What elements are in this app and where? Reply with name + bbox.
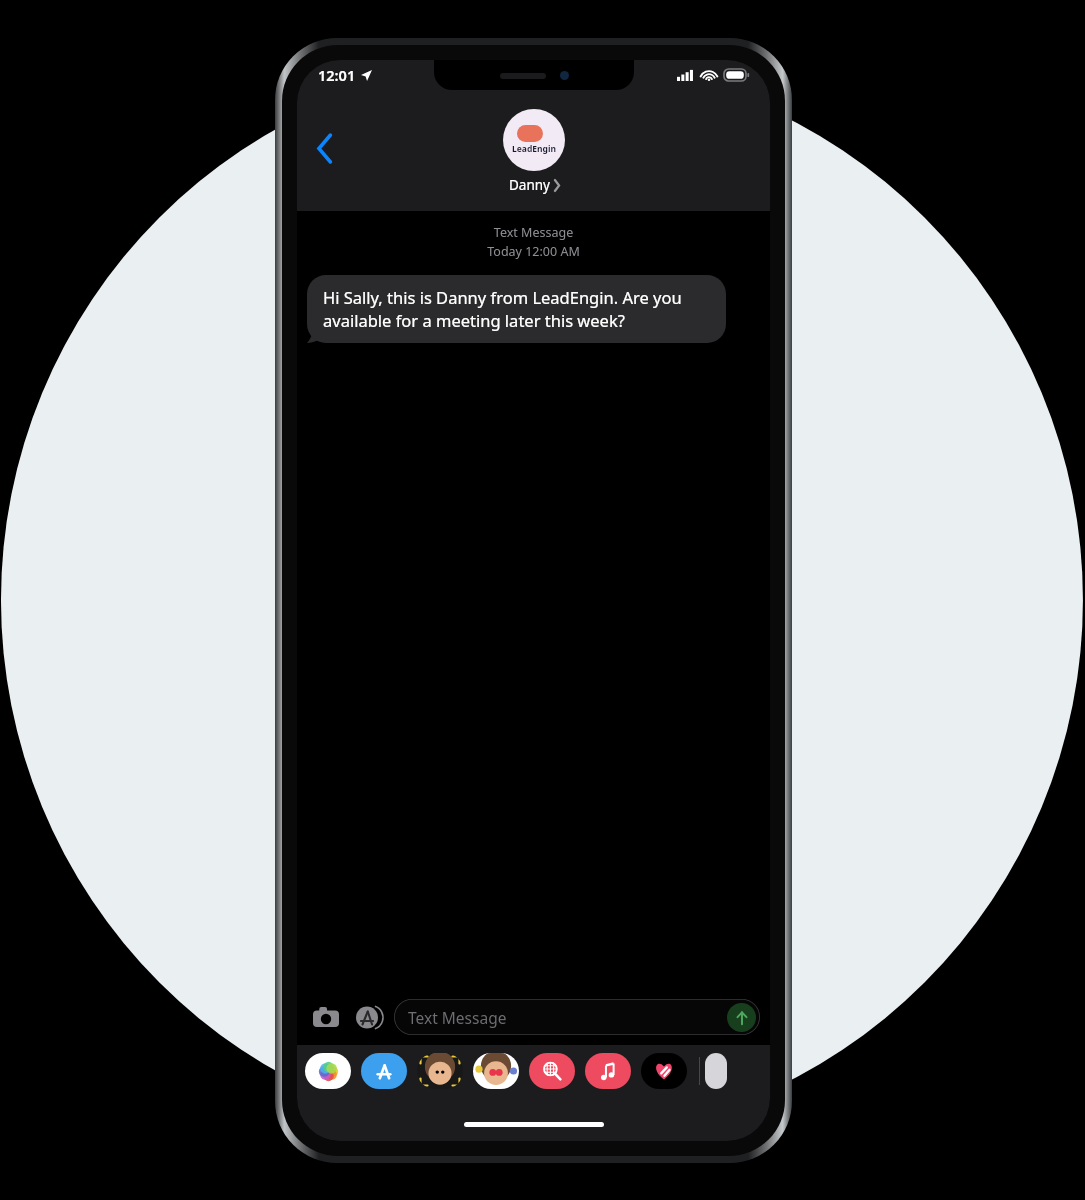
button[interactable]: Send: [727, 1003, 756, 1032]
button[interactable]: Photos: [305, 1053, 351, 1089]
staticText: Danny: [509, 176, 550, 194]
button[interactable]: LeadEngin: [503, 109, 565, 194]
button[interactable]: Images: [529, 1053, 575, 1089]
button[interactable]: Text Message: [394, 999, 760, 1035]
button[interactable]: Back: [303, 126, 347, 170]
button[interactable]: App Store: [361, 1053, 407, 1089]
button[interactable]: Memoji stickers: [473, 1053, 519, 1089]
staticText: Text Message: [408, 1007, 507, 1028]
staticText: LeadEngin: [512, 143, 557, 155]
staticText: 12:01: [318, 65, 356, 85]
button[interactable]: [705, 1053, 727, 1089]
button[interactable]: Hi Sally, this is Danny from LeadEngin. …: [307, 275, 726, 343]
button[interactable]: App Store: [349, 998, 387, 1036]
staticText: Hi Sally, this is Danny from LeadEngin. …: [323, 286, 710, 332]
staticText: Today 12:00 AM: [297, 243, 770, 260]
button[interactable]: Memoji: [417, 1053, 463, 1089]
button[interactable]: Music: [585, 1053, 631, 1089]
staticText: Text Message: [297, 224, 770, 241]
button[interactable]: Camera: [307, 998, 345, 1036]
button[interactable]: Digital Touch: [641, 1053, 687, 1089]
